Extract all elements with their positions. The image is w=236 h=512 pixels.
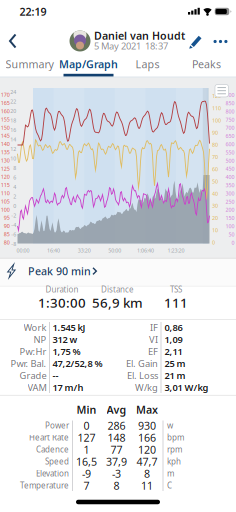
staticText: Grade — [19, 369, 46, 382]
staticText: IF — [150, 321, 158, 334]
staticText: -8 — [11, 240, 16, 248]
staticText: Max — [136, 402, 158, 417]
staticText: Pwr. Bal. — [10, 357, 46, 370]
staticText: 50 — [228, 231, 234, 238]
button[interactable]: More options — [209, 31, 231, 51]
staticText: Daniel van Houdt — [94, 28, 185, 43]
staticText: 120 — [212, 92, 221, 100]
staticText: 11 — [141, 478, 153, 493]
staticText: 140 — [1, 140, 10, 148]
staticText: Work — [23, 321, 46, 334]
staticText: Summary — [5, 57, 53, 71]
staticText: 22 — [10, 98, 16, 105]
staticText: 1:06:40 — [137, 247, 154, 254]
staticText: 1.545 kJ — [52, 321, 85, 334]
staticText: 17 m/h — [52, 381, 83, 394]
staticText: 8 — [113, 478, 119, 493]
staticText: 166 — [138, 430, 156, 445]
staticText: 30 — [212, 202, 218, 209]
staticText: W/kg — [135, 381, 158, 394]
staticText: 111 — [164, 294, 188, 311]
staticText: Cadence — [36, 444, 69, 455]
staticText: 5 May 2021 18:37 — [94, 40, 168, 52]
staticText: 95 — [4, 214, 10, 221]
staticText: EF — [148, 345, 158, 358]
staticText: 100 — [212, 117, 221, 124]
staticText: 16 — [10, 126, 16, 134]
staticText: 20 — [212, 214, 218, 222]
staticText: Peaks — [192, 57, 221, 71]
staticText: 120 — [138, 442, 156, 457]
staticText: 650 — [225, 132, 234, 140]
staticText: -9 — [82, 466, 91, 481]
staticText: 80 — [212, 141, 218, 148]
staticText: 8 — [13, 164, 16, 172]
staticText: Map/Graph — [59, 57, 118, 71]
staticText: TSS — [170, 284, 182, 295]
button[interactable]: Edit — [184, 29, 208, 53]
staticText: 1:30:00 — [38, 294, 86, 311]
staticText: 0 — [231, 239, 234, 246]
staticText: kph — [167, 456, 181, 467]
staticText: 10 — [212, 227, 218, 234]
button[interactable]: Chart options — [215, 84, 228, 97]
staticText: 3,01 W/kg — [164, 381, 208, 394]
staticText: 47,2/52,8 % — [52, 357, 102, 370]
button[interactable]: Laps — [118, 53, 177, 75]
button[interactable]: Map/Graph — [59, 53, 118, 75]
staticText: VI — [149, 333, 158, 346]
staticText: 40 — [212, 190, 218, 197]
staticText: rpm — [167, 444, 182, 455]
staticText: 80 — [4, 239, 10, 246]
staticText: 930 — [138, 418, 156, 433]
staticText: -6 — [11, 231, 16, 238]
staticText: 47,7 — [136, 454, 157, 469]
staticText: 250 — [225, 198, 234, 205]
staticText: 18 — [10, 117, 16, 124]
staticText: 700 — [225, 124, 234, 131]
staticText: -2 — [11, 212, 16, 219]
staticText: 8 — [144, 466, 150, 481]
staticText: 4 — [13, 183, 16, 191]
staticText: -3 — [112, 466, 121, 481]
staticText: 24 — [10, 88, 16, 96]
staticText: Laps — [135, 57, 159, 71]
staticText: 550 — [225, 149, 234, 156]
staticText: VAM — [27, 381, 46, 394]
staticText: 50:00 — [108, 247, 121, 254]
staticText: bpm — [167, 432, 184, 443]
staticText: NP — [33, 333, 46, 346]
staticText: 100 — [1, 206, 10, 213]
staticText: 2 — [13, 193, 16, 200]
staticText: Power — [45, 420, 69, 431]
staticText: 312 w — [52, 333, 77, 346]
staticText: 850 — [225, 100, 234, 107]
staticText: 350 — [225, 182, 234, 189]
staticText: Speed — [45, 456, 69, 467]
staticText: 6 — [13, 174, 16, 181]
staticText: 150 — [1, 124, 10, 131]
staticText: 0 — [83, 418, 89, 433]
button[interactable]: Summary — [0, 53, 59, 75]
staticText: Avg — [106, 402, 126, 417]
staticText: 500 — [225, 157, 234, 164]
staticText: 165 — [1, 99, 10, 107]
staticText: Min — [76, 402, 96, 417]
staticText: 00:00 — [16, 247, 29, 254]
staticText: Peak 90 min — [28, 264, 91, 278]
staticText: 400 — [225, 173, 234, 181]
staticText: 37,9 — [106, 454, 127, 469]
staticText: 10 — [10, 155, 16, 162]
staticText: 25 m — [164, 357, 185, 370]
staticText: 120 — [1, 173, 10, 180]
staticText: -4 — [11, 221, 16, 229]
staticText: Pw:Hr — [19, 345, 46, 358]
staticText: 105 — [1, 198, 10, 205]
button[interactable]: Peaks — [177, 53, 236, 75]
button[interactable]: Back — [0, 27, 26, 55]
staticText: El. Loss — [127, 369, 158, 382]
staticText: 14 — [10, 136, 16, 143]
staticText: 12 — [10, 145, 16, 153]
staticText: Temperature — [20, 480, 69, 491]
button[interactable]: Peak 90 min — [0, 258, 236, 286]
